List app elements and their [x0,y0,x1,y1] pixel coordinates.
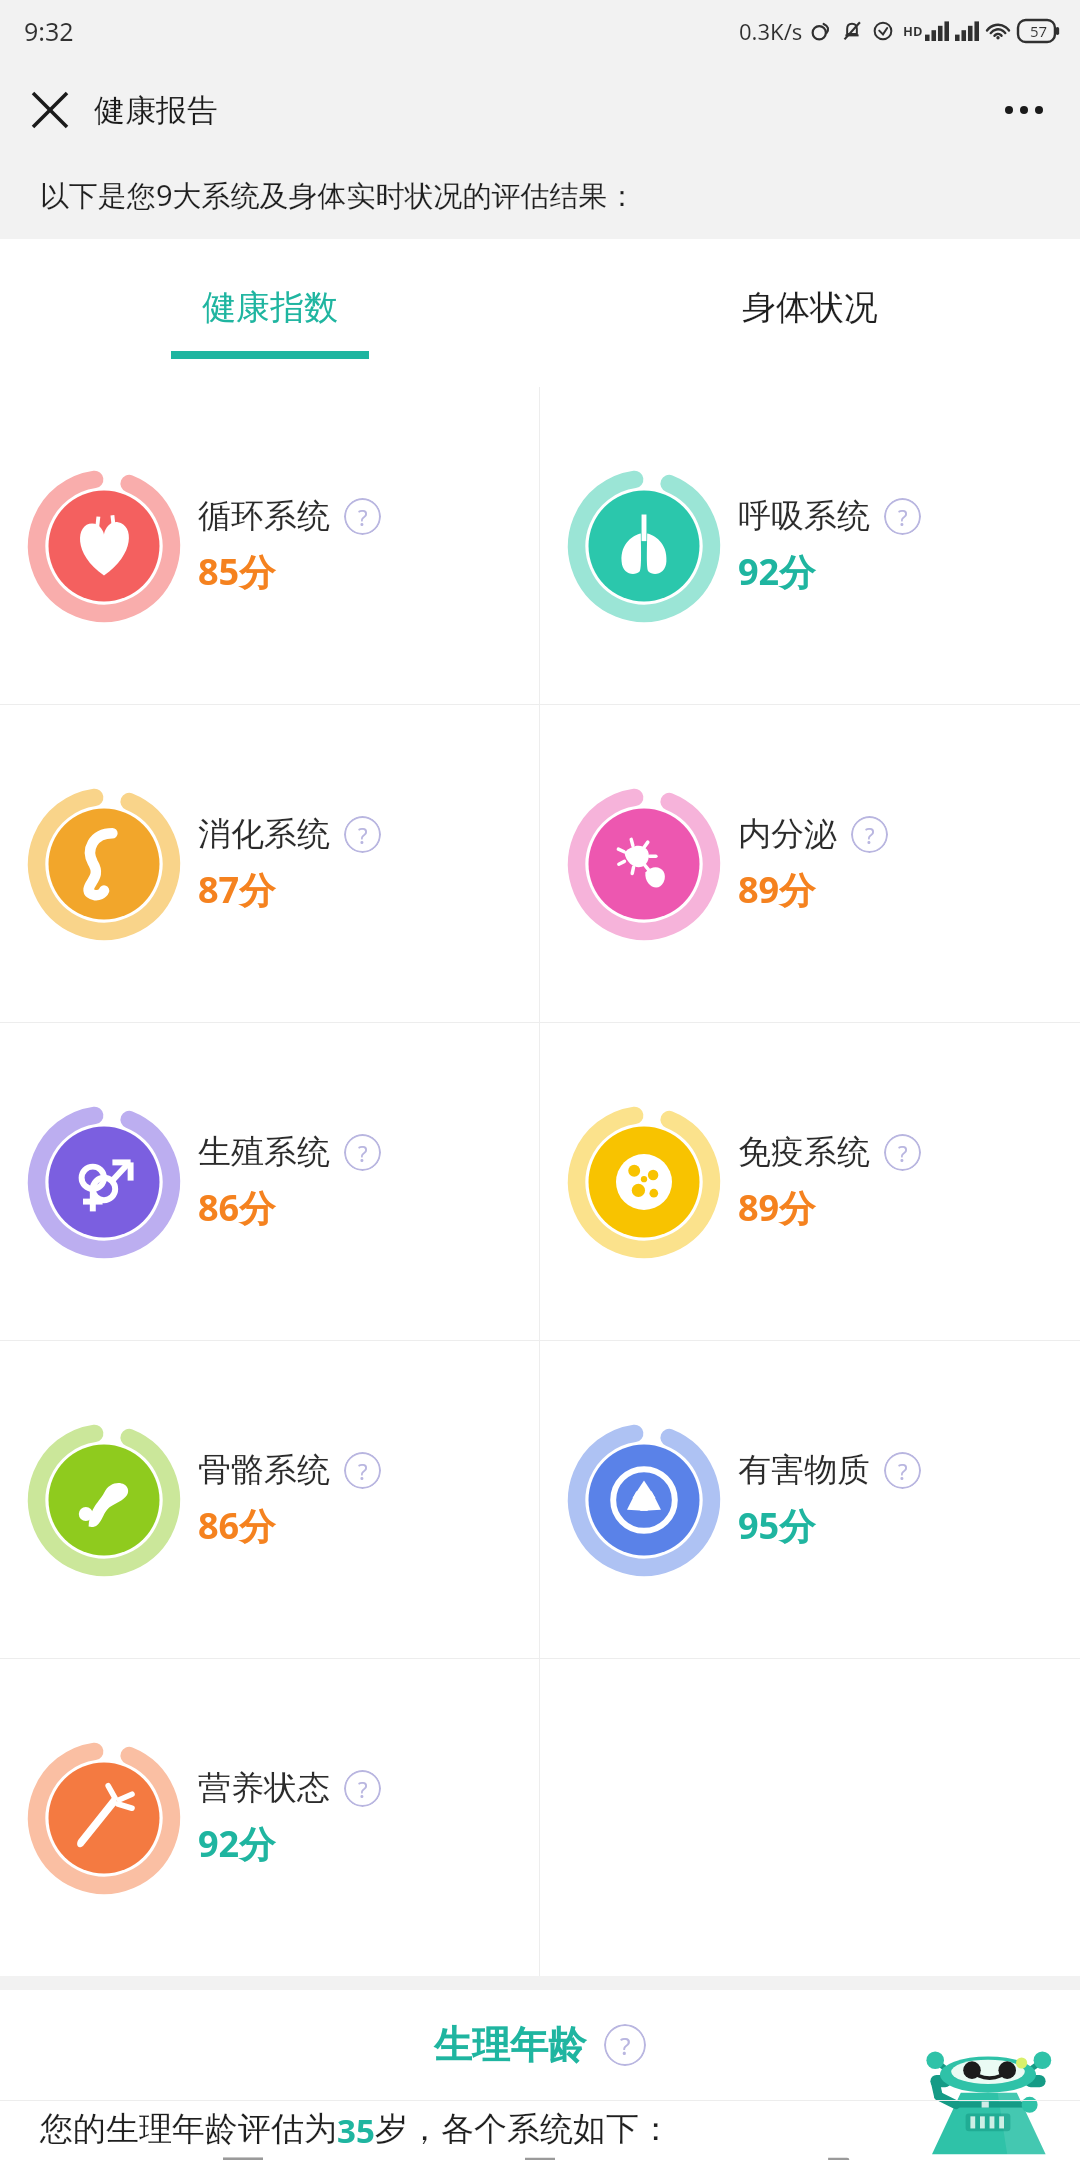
staticText: 86分 [198,1501,276,1550]
staticText: 有害物质 [738,1449,870,1491]
staticText: 健康指数 [202,286,338,329]
button[interactable]: 内分泌 [540,705,1080,1022]
staticText: ? [865,820,875,850]
button[interactable]: 身体状况 [540,239,1080,387]
staticText: ? [898,1138,908,1168]
staticText: 免疫系统 [738,1131,870,1173]
staticText: 循环系统 [198,495,330,537]
staticText: 健康报告 [94,91,218,130]
staticText: 身体状况 [742,286,878,329]
staticText: 57 [1030,21,1048,41]
staticText: ? [358,1774,368,1804]
button[interactable]: Help 内分泌 [851,816,888,853]
staticText: HD [903,22,923,40]
staticText: 生殖系统 [198,1131,330,1173]
staticText: ? [898,1456,908,1486]
staticText: 0.3K/s [739,16,803,46]
staticText: ? [358,502,368,532]
button[interactable]: 营养状态 [0,1659,539,1976]
button[interactable]: Close [22,82,78,138]
staticText: 生理年龄 [434,2021,586,2069]
button[interactable]: 生殖系统 [0,1023,539,1340]
staticText: 内分泌 [738,813,837,855]
button[interactable]: More options [994,80,1054,140]
staticText: ? [358,1138,368,1168]
button[interactable]: Help biological age [604,2024,646,2066]
button[interactable]: Help 营养状态 [344,1770,381,1807]
button[interactable]: 循环系统 [0,387,539,704]
staticText: 消化系统 [198,813,330,855]
staticText: 89分 [738,1183,816,1232]
button[interactable]: Help 免疫系统 [884,1134,921,1171]
staticText: 您的生理年龄评估为 [40,2108,337,2150]
staticText: 呼吸系统 [738,495,870,537]
staticText: 岁，各个系统如下： [375,2108,672,2150]
button[interactable]: Help 骨骼系统 [344,1452,381,1489]
staticText: 92分 [198,1819,276,1868]
button[interactable]: Help 消化系统 [344,816,381,853]
staticText: 89分 [738,865,816,914]
button[interactable]: Help 有害物质 [884,1452,921,1489]
button[interactable]: 呼吸系统 [540,387,1080,704]
staticText: 87分 [198,865,276,914]
staticText: ? [358,1456,368,1486]
button[interactable]: Help 呼吸系统 [884,498,921,535]
button[interactable]: Help 循环系统 [344,498,381,535]
staticText: 85分 [198,547,276,596]
staticText: ? [898,502,908,532]
staticText: 35 [337,2108,375,2153]
staticText: ? [358,820,368,850]
staticText: 92分 [738,547,816,596]
button[interactable]: 健康指数 [0,239,540,387]
staticText: 骨骼系统 [198,1449,330,1491]
staticText: 86分 [198,1183,276,1232]
staticText: 9:32 [24,14,74,48]
staticText: 以下是您9大系统及身体实时状况的评估结果： [40,175,637,215]
button[interactable]: 骨骼系统 [0,1341,539,1658]
button[interactable]: Help 生殖系统 [344,1134,381,1171]
staticText: 营养状态 [198,1767,330,1809]
button[interactable]: 免疫系统 [540,1023,1080,1340]
button[interactable]: 有害物质 [540,1341,1080,1658]
button[interactable]: 消化系统 [0,705,539,1022]
staticText: ? [620,2029,631,2062]
staticText: 95分 [738,1501,816,1550]
